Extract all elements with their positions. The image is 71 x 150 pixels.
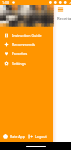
button[interactable]: Instruction Guide: [0, 31, 53, 40]
other: Status icons: [49, 1, 70, 4]
staticText: Favorites: [12, 51, 28, 56]
staticText: Logout: [35, 134, 47, 139]
button[interactable]: Settings: [0, 59, 53, 68]
button[interactable]: Rate App: [3, 131, 26, 142]
button[interactable]: Open navigation menu: [57, 6, 64, 13]
staticText: Receitas: [57, 16, 71, 22]
staticText: Recommends: [12, 42, 36, 47]
staticText: Settings: [12, 61, 26, 66]
staticText: Rate App: [10, 134, 25, 139]
button[interactable]: Recommends: [0, 40, 53, 49]
button[interactable]: Favorites: [0, 49, 53, 58]
staticText: 1:08: [2, 0, 10, 5]
staticText: Instruction Guide: [12, 33, 42, 38]
button[interactable]: Logout: [28, 131, 52, 142]
